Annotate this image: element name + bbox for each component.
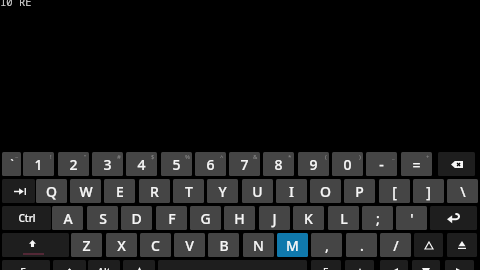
staticText: C: [151, 236, 160, 255]
staticText: X: [117, 236, 126, 255]
button[interactable]: 4: [126, 152, 157, 176]
staticText: \: [460, 182, 466, 201]
button[interactable]: V: [174, 233, 205, 257]
button[interactable]: ;: [362, 206, 393, 230]
button[interactable]: E: [104, 179, 135, 203]
staticText: ❖: [65, 267, 74, 270]
staticText: [: [392, 182, 397, 201]
button[interactable]: 0: [332, 152, 363, 176]
button[interactable]: Left: [380, 260, 408, 270]
staticText: &: [253, 153, 258, 161]
staticText: F: [323, 265, 329, 270]
staticText: 1: [34, 155, 43, 174]
staticText: O: [320, 182, 331, 201]
staticText: M: [286, 236, 299, 255]
staticText: (: [325, 153, 327, 161]
button[interactable]: 3: [92, 152, 123, 176]
button[interactable]: 6: [195, 152, 226, 176]
staticText: %: [185, 153, 190, 161]
button[interactable]: `: [2, 152, 21, 176]
staticText: #: [117, 153, 121, 161]
button[interactable]: P: [344, 179, 375, 203]
button[interactable]: B: [208, 233, 239, 257]
staticText: Fn: [20, 265, 32, 270]
button[interactable]: /: [380, 233, 411, 257]
staticText: D: [131, 209, 142, 228]
staticText: 2: [69, 155, 78, 174]
button[interactable]: 8: [263, 152, 294, 176]
button[interactable]: 1: [23, 152, 54, 176]
button[interactable]: Settings: [345, 260, 374, 270]
staticText: I: [289, 182, 294, 201]
button[interactable]: Y: [207, 179, 238, 203]
button[interactable]: I: [276, 179, 307, 203]
staticText: ,: [325, 236, 329, 255]
button[interactable]: O: [310, 179, 341, 203]
button[interactable]: Up: [414, 233, 443, 257]
button[interactable]: ': [396, 206, 427, 230]
button[interactable]: Q: [36, 179, 67, 203]
button[interactable]: Right: [445, 260, 474, 270]
button[interactable]: =: [401, 152, 432, 176]
button[interactable]: .: [346, 233, 377, 257]
button[interactable]: F: [156, 206, 187, 230]
button[interactable]: 7: [229, 152, 260, 176]
button[interactable]: D: [121, 206, 152, 230]
button[interactable]: M: [277, 233, 308, 257]
staticText: ): [359, 153, 361, 161]
button[interactable]: \: [447, 179, 478, 203]
button[interactable]: [: [379, 179, 410, 203]
button[interactable]: U: [242, 179, 273, 203]
button[interactable]: Shift: [2, 233, 69, 257]
button[interactable]: 2: [58, 152, 89, 176]
button[interactable]: Emoji: [123, 260, 155, 270]
button[interactable]: Ctrl: [2, 206, 51, 230]
button[interactable]: Z: [71, 233, 102, 257]
button[interactable]: Alt: [88, 260, 120, 270]
button[interactable]: R: [139, 179, 170, 203]
staticText: 0: [343, 155, 352, 174]
button[interactable]: G: [190, 206, 221, 230]
button[interactable]: A: [52, 206, 83, 230]
button[interactable]: H: [224, 206, 255, 230]
button[interactable]: -: [366, 152, 397, 176]
staticText: 3: [103, 155, 112, 174]
staticText: +: [426, 153, 430, 161]
button[interactable]: Tab: [2, 179, 35, 203]
staticText: F: [168, 209, 176, 228]
staticText: -: [379, 155, 384, 174]
button[interactable]: Fn: [2, 260, 50, 270]
button[interactable]: Backspace: [438, 152, 475, 176]
button[interactable]: J: [259, 206, 290, 230]
staticText: $: [151, 153, 155, 161]
staticText: *: [288, 153, 292, 161]
button[interactable]: S: [87, 206, 118, 230]
staticText: =: [412, 155, 421, 174]
button[interactable]: W: [70, 179, 101, 203]
button[interactable]: Enter: [430, 206, 477, 230]
staticText: ^: [220, 153, 224, 161]
staticText: 8: [274, 155, 283, 174]
button[interactable]: X: [106, 233, 137, 257]
button[interactable]: ❖: [53, 260, 86, 270]
staticText: S: [99, 209, 107, 228]
button[interactable]: N: [243, 233, 274, 257]
button[interactable]: 9: [298, 152, 329, 176]
button[interactable]: 5: [161, 152, 192, 176]
button[interactable]: L: [328, 206, 359, 230]
button[interactable]: C: [140, 233, 171, 257]
staticText: 9: [309, 155, 318, 174]
button[interactable]: Symbols: [311, 260, 341, 270]
button[interactable]: Shift lock: [447, 233, 477, 257]
button[interactable]: K: [293, 206, 324, 230]
button[interactable]: Down: [412, 260, 440, 270]
staticText: 6: [206, 155, 215, 174]
staticText: ~: [15, 153, 19, 161]
button[interactable]: T: [173, 179, 204, 203]
staticText: 10 RE: [0, 0, 32, 9]
button[interactable]: ]: [413, 179, 444, 203]
staticText: Alt: [97, 265, 111, 270]
button[interactable]: ,: [311, 233, 342, 257]
staticText: L: [340, 209, 348, 228]
